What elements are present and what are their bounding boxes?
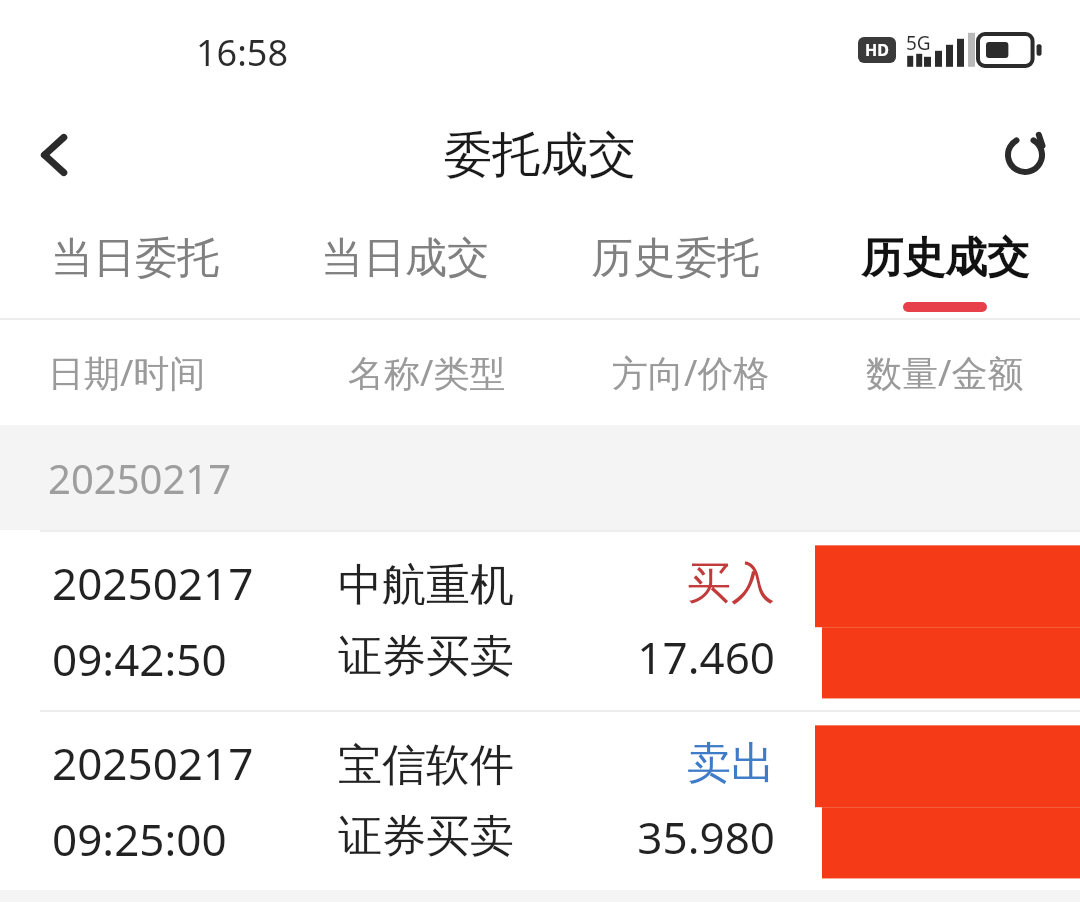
button[interactable]: 20250217 — [0, 532, 1080, 710]
button[interactable]: 历史成交 — [810, 210, 1080, 320]
staticText: 证券买卖 — [338, 809, 514, 864]
staticText: 名称/类型 — [348, 348, 506, 397]
staticText: 20250217 — [52, 733, 254, 793]
staticText: 20250217 — [52, 553, 254, 613]
staticText: 35.980 — [560, 807, 775, 867]
staticText: 中航重机 — [338, 558, 514, 613]
staticText: 20250217 — [48, 451, 232, 505]
staticText: 买入 — [560, 556, 775, 611]
staticText: 09:25:00 — [52, 809, 227, 869]
button[interactable]: 当日成交 — [270, 210, 540, 320]
button[interactable]: Back — [0, 100, 110, 210]
staticText: 委托成交 — [444, 125, 636, 185]
staticText: 5G — [906, 30, 931, 56]
staticText: 09:42:50 — [52, 629, 227, 689]
staticText: 17.460 — [560, 627, 775, 687]
staticText: 当日成交 — [321, 232, 489, 285]
staticText: 日期/时间 — [48, 348, 206, 397]
staticText: 16:58 — [196, 28, 289, 77]
button[interactable]: Refresh — [970, 100, 1080, 210]
staticText: 当日委托 — [51, 232, 219, 285]
staticText: 卖出 — [560, 736, 775, 791]
staticText: 数量/金额 — [866, 348, 1024, 397]
staticText: 证券买卖 — [338, 629, 514, 684]
button[interactable]: 当日委托 — [0, 210, 270, 320]
staticText: HD — [865, 39, 889, 61]
button[interactable]: 20250217 — [0, 712, 1080, 890]
staticText: 方向/价格 — [612, 348, 770, 397]
button[interactable]: 历史委托 — [540, 210, 810, 320]
staticText: 历史成交 — [861, 232, 1029, 285]
staticText: 历史委托 — [591, 232, 759, 285]
staticText: 宝信软件 — [338, 738, 514, 793]
